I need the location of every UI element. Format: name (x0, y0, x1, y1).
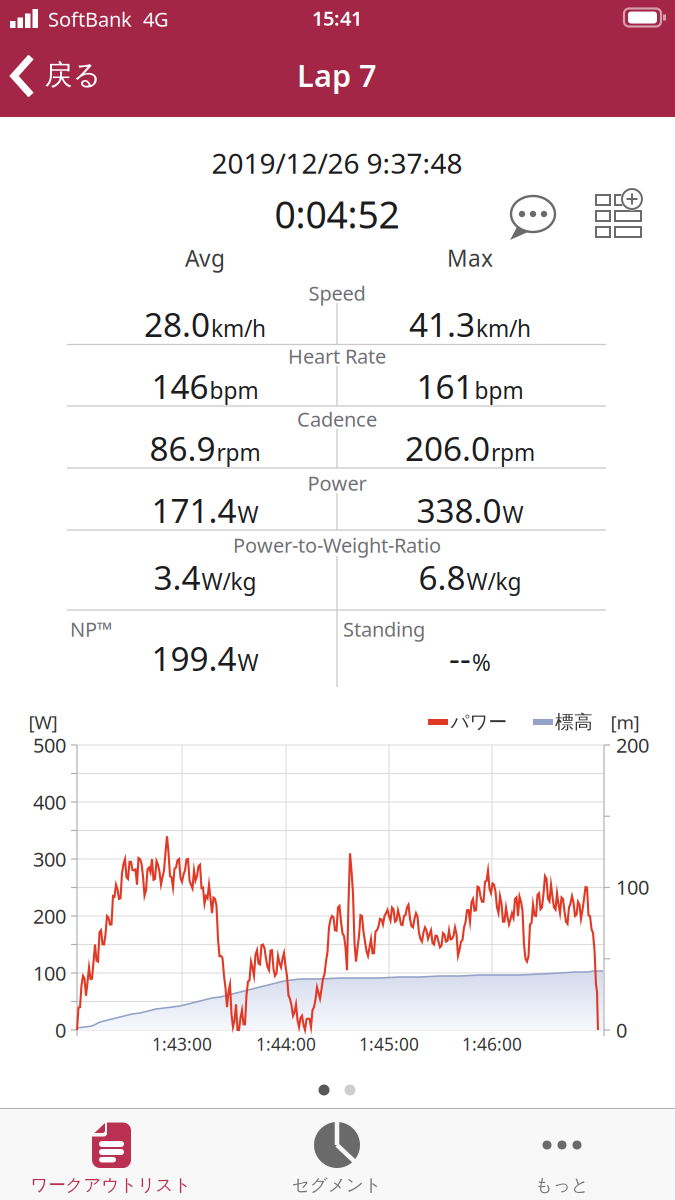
staticText: 300 (33, 846, 66, 872)
staticText: 171.4 (151, 488, 236, 532)
staticText: 1:46:00 (462, 1032, 522, 1055)
staticText: 161 (416, 364, 473, 408)
staticText: W/kg (466, 566, 521, 596)
staticText: セグメント (292, 1174, 382, 1196)
staticText: 0:04:52 (274, 189, 399, 239)
staticText: 4G (143, 6, 169, 32)
staticText: 28.0 (144, 302, 210, 346)
staticText: bpm (209, 375, 258, 405)
staticText: Max (447, 243, 493, 273)
staticText: 1:43:00 (152, 1032, 212, 1055)
staticText: 200 (33, 903, 66, 929)
staticText: 100 (33, 960, 66, 986)
button[interactable]: セグメント (225, 1109, 450, 1199)
staticText: NP™ (70, 616, 112, 642)
staticText: W (502, 499, 523, 529)
staticText: 100 (616, 874, 649, 900)
staticText: W (237, 647, 258, 677)
staticText: rpm (491, 437, 535, 467)
staticText: 200 (616, 732, 649, 758)
button[interactable]: もっと (450, 1109, 675, 1199)
staticText: -- (449, 636, 471, 680)
staticText: 199.4 (151, 636, 236, 680)
staticText: 500 (33, 732, 66, 758)
staticText: 標高 (555, 710, 593, 733)
staticText: 400 (33, 789, 66, 815)
staticText: [W] (28, 710, 57, 734)
staticText: パワー (450, 710, 507, 733)
staticText: 戻る (44, 58, 101, 92)
staticText: Standing (343, 616, 425, 642)
staticText: Heart Rate (288, 343, 386, 369)
staticText: [m] (610, 710, 639, 734)
staticText: 2019/12/26 9:37:48 (211, 144, 462, 182)
staticText: 6.8 (418, 555, 465, 599)
staticText: % (472, 647, 491, 677)
staticText: W (237, 499, 258, 529)
staticText: km/h (476, 313, 531, 343)
staticText: 3.4 (153, 555, 200, 599)
staticText: Lap 7 (297, 55, 377, 95)
staticText: SoftBank (48, 6, 132, 32)
staticText: Power-to-Weight-Ratio (233, 532, 441, 558)
staticText: 0 (616, 1017, 627, 1043)
staticText: 1:45:00 (359, 1032, 419, 1055)
staticText: W/kg (201, 566, 256, 596)
staticText: 146 (151, 364, 208, 408)
staticText: 86.9 (149, 426, 215, 470)
button[interactable]: コメント (501, 187, 565, 245)
staticText: ワークアウトリスト (30, 1174, 191, 1196)
staticText: Avg (185, 243, 225, 273)
staticText: 15:41 (312, 5, 362, 31)
staticText: 206.0 (405, 426, 490, 470)
staticText: bpm (474, 375, 523, 405)
staticText: もっと (535, 1174, 589, 1196)
button[interactable]: 戻る (4, 48, 124, 104)
staticText: km/h (211, 313, 266, 343)
staticText: Speed (308, 280, 365, 306)
button[interactable]: ワークアウトリスト (0, 1109, 225, 1199)
button[interactable]: ラップリスト (586, 186, 650, 244)
staticText: 41.3 (409, 302, 475, 346)
staticText: 1:44:00 (256, 1032, 316, 1055)
staticText: 338.0 (416, 488, 501, 532)
staticText: rpm (216, 437, 260, 467)
staticText: 0 (55, 1017, 66, 1043)
staticText: Power (307, 470, 366, 496)
staticText: Cadence (297, 406, 377, 432)
